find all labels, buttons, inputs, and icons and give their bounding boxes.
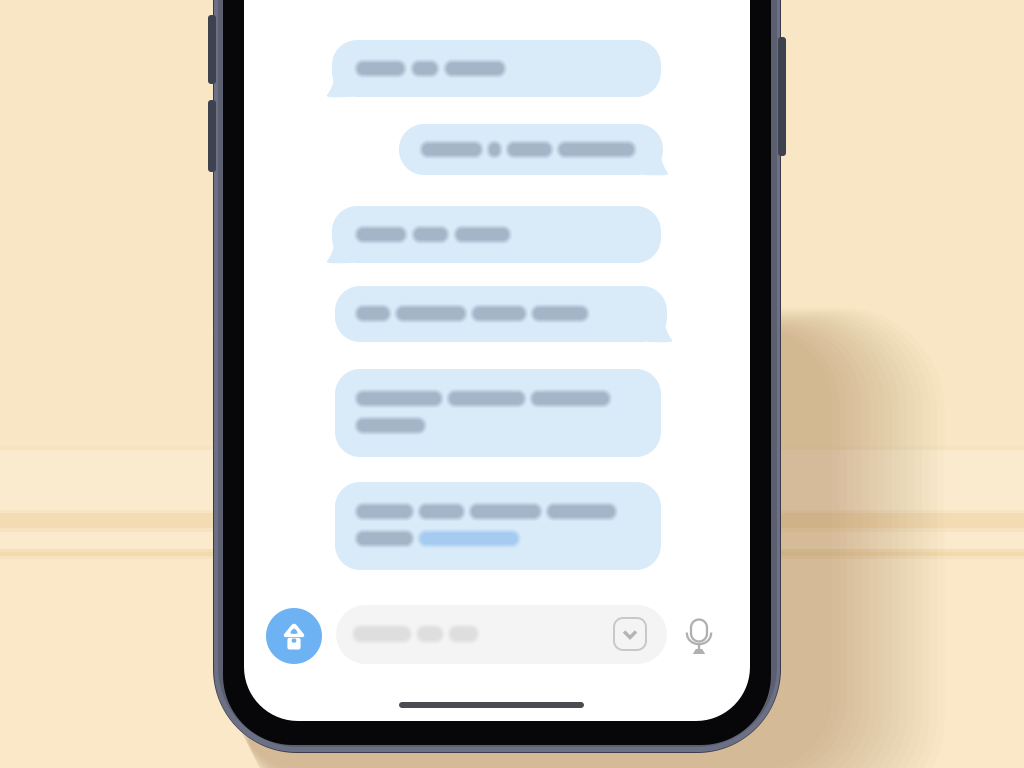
button[interactable]: Expand message options <box>614 618 646 650</box>
button[interactable]: Message field <box>336 605 667 664</box>
button[interactable]: Open home <box>266 608 322 664</box>
button[interactable]: Record voice message <box>677 615 721 659</box>
